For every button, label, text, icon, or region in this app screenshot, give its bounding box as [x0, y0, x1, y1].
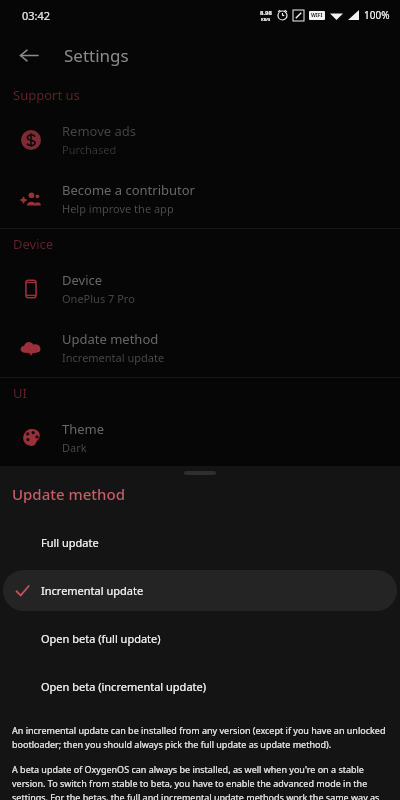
button[interactable]: Device [0, 259, 400, 318]
button[interactable]: Open beta (full update) [3, 618, 397, 659]
staticText: WIFI [311, 12, 323, 19]
staticText: Help improve the app [62, 201, 174, 216]
staticText: An incremental update can be installed f… [12, 724, 388, 751]
staticText: Open beta (full update) [41, 631, 161, 646]
button[interactable]: Open beta (incremental update) [3, 666, 397, 707]
staticText: Update method [12, 484, 125, 504]
staticText: 03:42 [22, 8, 51, 23]
button[interactable]: Remove ads [0, 110, 400, 169]
staticText: Incremental update [41, 583, 144, 598]
button[interactable]: Become a contributor [0, 169, 400, 228]
staticText: 100% [364, 8, 390, 22]
button[interactable]: Update method [0, 318, 400, 377]
staticText: Theme [62, 420, 105, 438]
staticText: Support us [13, 86, 80, 104]
button[interactable]: Back [8, 35, 48, 75]
staticText: UI [13, 384, 27, 402]
button[interactable]: Full update [3, 522, 397, 563]
staticText: Device [62, 271, 103, 289]
staticText: Device [13, 235, 54, 253]
staticText: Full update [41, 535, 99, 550]
staticText: Open beta (incremental update) [41, 679, 207, 694]
staticText: A beta update of OxygenOS can always be … [12, 763, 388, 800]
button[interactable]: Theme [0, 408, 400, 467]
staticText: KB/S [261, 17, 271, 22]
button[interactable]: Incremental update [3, 570, 397, 611]
staticText: Become a contributor [62, 181, 195, 199]
staticText: Dark [62, 440, 87, 455]
staticText: OnePlus 7 Pro [62, 291, 135, 306]
staticText: Settings [64, 44, 129, 67]
staticText: Remove ads [62, 122, 137, 140]
staticText: Purchased [62, 142, 117, 157]
staticText: 8.98 [260, 9, 272, 17]
staticText: Update method [62, 330, 159, 348]
staticText: Incremental update [62, 350, 165, 365]
